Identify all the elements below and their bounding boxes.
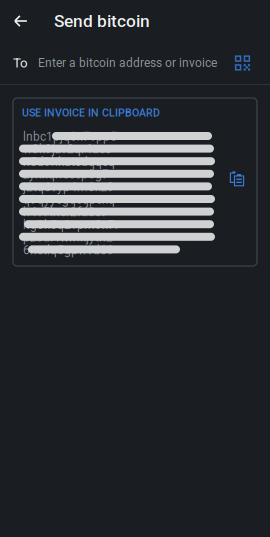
- staticText: q9qyysgqcqpcxq: [23, 193, 115, 207]
- staticText: lnbc1pjq8x7vpp5: [23, 130, 117, 144]
- button[interactable]: Copy invoice: [223, 165, 251, 193]
- staticText: zynxqrrsssp5g7: [23, 167, 109, 181]
- staticText: hg3k5q2vpm9x7r: [23, 218, 119, 232]
- staticText: pz8dl4wmkjyth2: [23, 230, 113, 244]
- staticText: h4v7lncr2fd8st: [23, 205, 105, 219]
- button[interactable]: Back: [0, 0, 41, 42]
- staticText: USE INVOICE IN CLIPBOARD: [22, 106, 160, 119]
- staticText: j2tq6vyp4m8xz9: [23, 180, 114, 194]
- staticText: To: [13, 55, 28, 71]
- staticText: Enter a bitcoin address or invoice: [38, 56, 217, 70]
- button[interactable]: USE INVOICE IN CLIPBOARD: [13, 98, 257, 266]
- staticText: Send bitcoin: [54, 11, 150, 31]
- staticText: n5d9hkutsdqqcq: [23, 155, 115, 169]
- staticText: 6nctlq5gpwvd69: [23, 243, 114, 257]
- button[interactable]: Scan QR code: [226, 46, 259, 79]
- staticText: w3k9jzv2qr4ues: [23, 142, 111, 156]
